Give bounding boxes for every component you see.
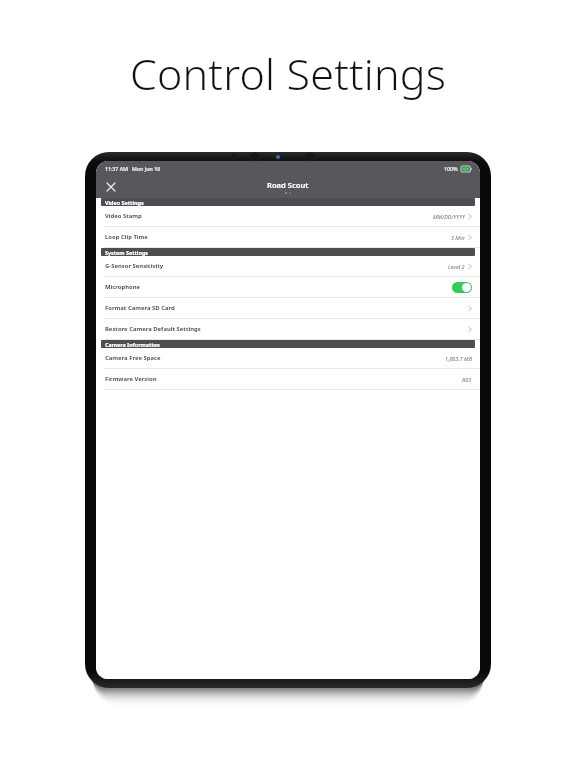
button[interactable]: Video Stamp [96, 206, 480, 226]
staticText: 1,003.7 MB [445, 355, 472, 362]
staticText: MM/DD/YYYY [433, 213, 465, 220]
button[interactable]: Firmware Version [96, 369, 480, 389]
staticText: Loop Clip Time [105, 233, 148, 241]
button[interactable]: G-Sensor Sensitivity [96, 256, 480, 276]
staticText: Camera Information [105, 341, 160, 348]
staticText: System Settings [105, 249, 149, 256]
staticText: 11:37 AM [105, 165, 128, 172]
staticText: Format Camera SD Card [105, 304, 175, 312]
staticText: 3 Min [451, 234, 465, 241]
staticText: G-Sensor Sensitivity [105, 262, 164, 270]
button[interactable]: Format Camera SD Card [96, 298, 480, 318]
staticText: Microphone [105, 283, 141, 291]
staticText: Firmware Version [105, 375, 157, 383]
staticText: 100% [444, 165, 458, 172]
staticText: Camera Free Space [105, 354, 161, 362]
staticText: Video Stamp [105, 212, 142, 220]
staticText: Control Settings [0, 44, 576, 103]
button[interactable]: Loop Clip Time [96, 227, 480, 247]
button[interactable]: Microphone [96, 277, 480, 297]
staticText: Restore Camera Default Settings [105, 325, 201, 333]
button[interactable]: Close [102, 178, 120, 196]
staticText: Road Scout [267, 180, 309, 190]
staticText: Mon Jun 10 [132, 165, 161, 172]
staticText: Level 2 [448, 263, 465, 270]
button[interactable]: Microphone toggle, on [452, 282, 472, 293]
button[interactable]: Restore Camera Default Settings [96, 319, 480, 339]
staticText: Video Settings [105, 199, 144, 206]
staticText: R03 [462, 376, 472, 383]
button[interactable]: Camera Free Space [96, 348, 480, 368]
